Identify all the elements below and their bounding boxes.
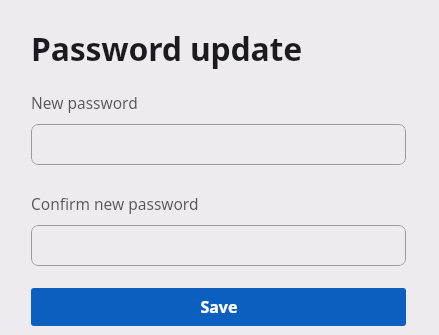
staticText: Password update [31, 27, 303, 71]
staticText: Confirm new password [31, 193, 199, 214]
button[interactable]: Save [31, 288, 406, 326]
button[interactable]: New password [31, 124, 406, 165]
button[interactable]: Confirm new password [31, 225, 406, 266]
staticText: Save [200, 296, 238, 318]
staticText: New password [31, 92, 138, 113]
